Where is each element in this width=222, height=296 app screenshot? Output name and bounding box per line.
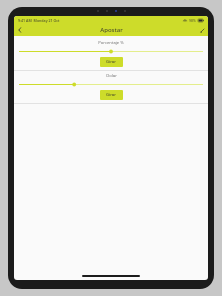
button[interactable]: Girar — [100, 57, 123, 67]
staticText: Girar — [106, 59, 117, 65]
staticText: Girar — [106, 92, 117, 98]
staticText: Dolar — [106, 73, 117, 79]
button[interactable]: Back — [14, 24, 26, 36]
button[interactable]: Slider — [19, 48, 203, 55]
button[interactable]: Girar — [100, 90, 123, 100]
button[interactable]: Edit — [196, 24, 208, 36]
staticText: 9:41 AM Monday 21 Oct — [18, 18, 60, 23]
staticText: 98% — [189, 18, 196, 23]
staticText: Apostar — [100, 26, 123, 34]
button[interactable]: Slider — [19, 81, 203, 88]
staticText: Porcentaje % — [98, 40, 124, 46]
